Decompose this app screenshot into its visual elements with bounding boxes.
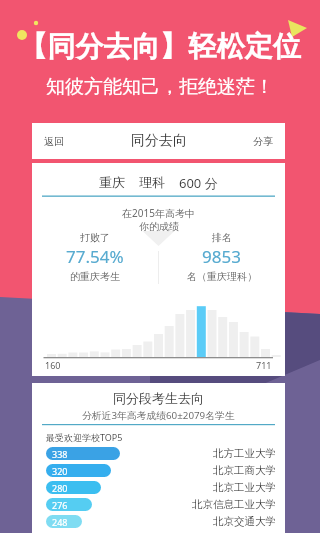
staticText: 248 [52,516,68,528]
staticText: 名（重庆理科） [187,270,257,283]
staticText: 排名 [212,231,232,244]
staticText: 在2015年高考中 [122,206,195,220]
button[interactable]: 276 [32,496,285,513]
staticText: 【同分去向】轻松定位 [19,29,301,64]
button[interactable]: 返回 [32,123,76,159]
button[interactable]: 248 [32,513,285,530]
staticText: 600 分 [179,174,218,192]
staticText: 北京交通大学 [213,515,276,528]
staticText: 北方工业大学 [213,447,276,460]
staticText: 同分段考生去向 [113,390,204,406]
staticText: 北京信息工业大学 [192,498,276,511]
staticText: 你的成绩 [139,220,179,233]
staticText: 返回 [44,135,64,148]
staticText: 分析近3年高考成绩60±2079名学生 [82,409,235,422]
staticText: 9853 [202,245,241,268]
staticText: 打败了 [80,231,110,244]
button[interactable]: 320 [32,462,285,479]
staticText: 知彼方能知己，拒绝迷茫！ [46,75,274,99]
staticText: 的重庆考生 [70,270,120,283]
staticText: 160 [45,359,61,371]
staticText: 理科 [139,174,165,190]
staticText: 分享 [253,135,273,148]
staticText: 280 [52,482,68,494]
staticText: 320 [52,465,68,477]
staticText: 北京工商大学 [213,464,276,477]
button[interactable]: 338 [32,445,285,462]
staticText: 同分去向 [131,132,187,150]
staticText: 338 [52,448,68,460]
staticText: 77.54% [66,245,124,268]
staticText: 重庆 [99,174,125,190]
button[interactable]: 280 [32,479,285,496]
button[interactable]: 分享 [241,123,285,159]
staticText: 711 [256,359,272,371]
staticText: 276 [52,499,68,511]
staticText: 最受欢迎学校TOP5 [46,431,123,443]
staticText: 北京工业大学 [213,481,276,494]
